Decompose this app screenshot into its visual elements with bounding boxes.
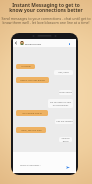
button[interactable]: Sounds good	[59, 137, 72, 142]
staticText: Richard Flores	[25, 42, 42, 45]
button[interactable]: Call me tonight	[55, 119, 73, 124]
staticText: Sounds good	[59, 137, 72, 142]
button[interactable]: How is your day going?	[16, 77, 49, 83]
staticText: Do you want to talk on the phone?	[50, 101, 71, 107]
staticText: Hey, hello	[58, 71, 69, 74]
button[interactable]: Back	[13, 39, 76, 47]
button[interactable]: Video call	[69, 43, 70, 45]
staticText: How is your day going?	[20, 79, 45, 82]
button[interactable]: Send	[66, 166, 70, 169]
button[interactable]: Yes I would love to	[16, 110, 48, 116]
button[interactable]	[13, 152, 76, 173]
button[interactable]: Okay, see you then	[16, 127, 46, 133]
staticText: Send a Message...	[20, 163, 42, 166]
staticText: Send messages to your connections - chat…	[1, 16, 91, 25]
staticText: Okay, see you then	[21, 129, 42, 132]
button[interactable]: Hi there!	[16, 64, 35, 69]
staticText: Call me tonight	[56, 120, 73, 123]
staticText: Instant Messaging to get to know your co…	[9, 2, 83, 13]
button[interactable]: Pretty good	[59, 90, 72, 95]
button[interactable]: Back	[14, 41, 18, 45]
staticText: Yes I would love to	[22, 112, 42, 115]
button[interactable]: Hey, hello	[54, 70, 73, 75]
staticText: Hi there!	[21, 65, 31, 68]
button[interactable]: Do you want to talk on the phone?	[48, 99, 73, 108]
staticText: Pretty good	[59, 91, 72, 94]
